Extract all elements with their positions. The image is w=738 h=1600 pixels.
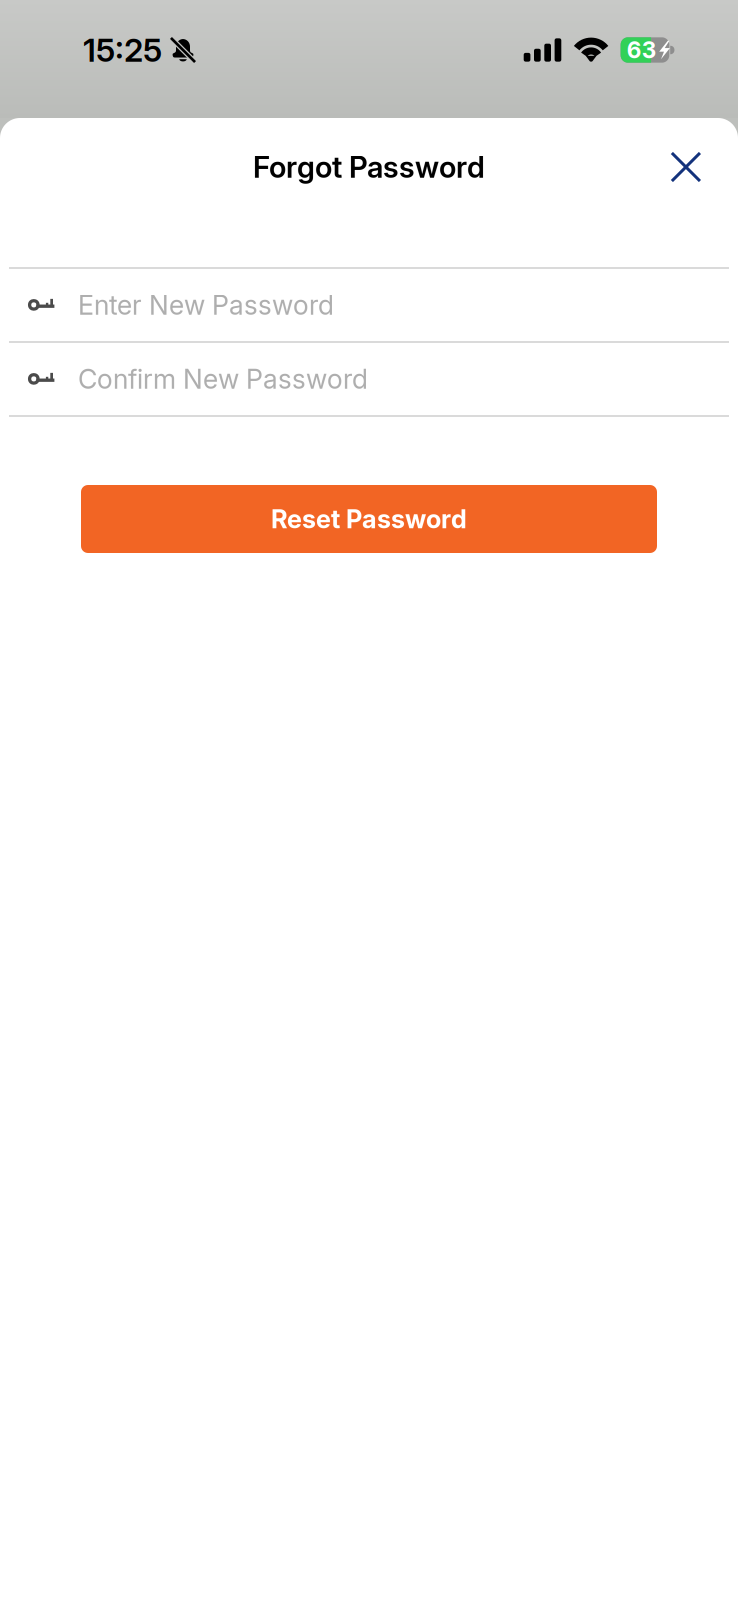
staticText: Forgot Password	[253, 149, 485, 185]
staticText: Enter New Password	[78, 289, 334, 321]
button[interactable]: Close	[649, 134, 723, 200]
staticText: Reset Password	[271, 504, 467, 534]
staticText: 63	[627, 36, 657, 64]
staticText: 15:25	[83, 31, 162, 69]
button[interactable]: Confirm New Password	[0, 343, 738, 415]
button[interactable]: Enter New Password	[0, 269, 738, 341]
button[interactable]: Reset Password	[81, 485, 657, 553]
staticText: Confirm New Password	[78, 363, 368, 395]
